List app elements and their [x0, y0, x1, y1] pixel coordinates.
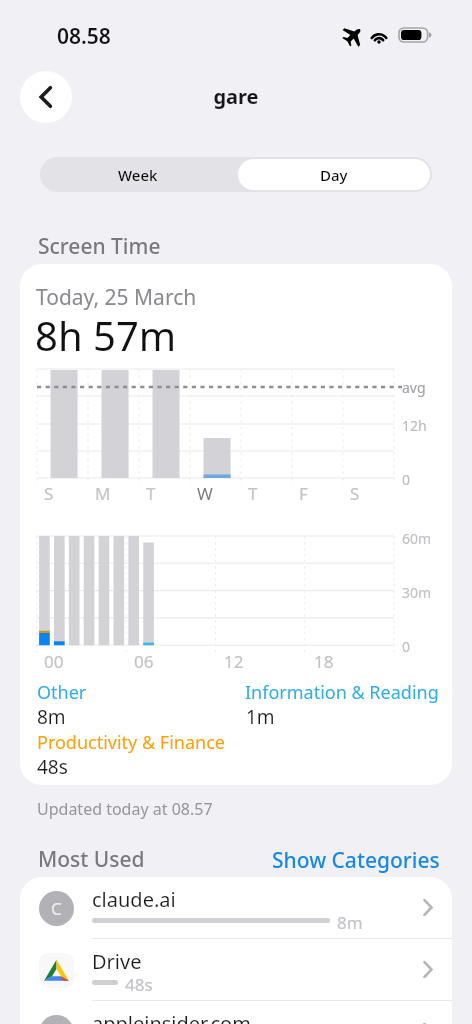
staticText: 30m — [402, 583, 432, 602]
staticText: 48s — [125, 973, 153, 996]
button[interactable]: Drive — [20, 939, 452, 1000]
button[interactable]: Day — [238, 159, 430, 190]
staticText: avg — [402, 378, 426, 397]
staticText: Information & Reading — [245, 680, 439, 705]
staticText: 06 — [134, 650, 154, 673]
staticText: 8m — [337, 911, 363, 934]
staticText: 18 — [314, 650, 334, 673]
staticText: gare — [0, 83, 472, 110]
staticText: 8h 57m — [35, 308, 177, 362]
staticText: 48s — [37, 754, 68, 780]
staticText: M — [95, 482, 111, 505]
staticText: S — [350, 482, 360, 505]
staticText: S — [44, 482, 54, 505]
staticText: 12h — [402, 416, 427, 435]
staticText: 8m — [37, 704, 66, 730]
staticText: Most Used — [38, 845, 145, 874]
staticText: 12 — [224, 650, 244, 673]
staticText: Drive — [92, 948, 142, 975]
staticText: Day — [320, 165, 348, 185]
button[interactable]: Show Categories — [268, 843, 444, 878]
button[interactable]: C — [20, 877, 452, 938]
staticText: T — [248, 482, 258, 505]
staticText: Updated today at 08.57 — [37, 798, 213, 820]
staticText: T — [146, 482, 156, 505]
staticText: appleinsider.com — [92, 1010, 251, 1024]
staticText: Today, 25 March — [36, 283, 197, 312]
button[interactable]: appleinsider.com — [20, 1001, 452, 1024]
staticText: 08.58 — [57, 22, 111, 51]
staticText: 0 — [402, 470, 411, 489]
staticText: 1m — [246, 704, 275, 730]
staticText: 0 — [402, 637, 411, 656]
staticText: W — [197, 482, 213, 505]
staticText: Screen Time — [38, 232, 161, 261]
staticText: 60m — [402, 529, 432, 548]
staticText: F — [299, 482, 308, 505]
staticText: Other — [37, 680, 87, 705]
button[interactable]: Back — [20, 71, 72, 123]
staticText: C — [51, 897, 62, 920]
staticText: Productivity & Finance — [37, 730, 225, 755]
staticText: Show Categories — [272, 846, 440, 875]
staticText: claude.ai — [92, 886, 176, 913]
staticText: Week — [118, 165, 158, 185]
button[interactable]: Week — [40, 157, 236, 192]
staticText: 00 — [44, 650, 64, 673]
